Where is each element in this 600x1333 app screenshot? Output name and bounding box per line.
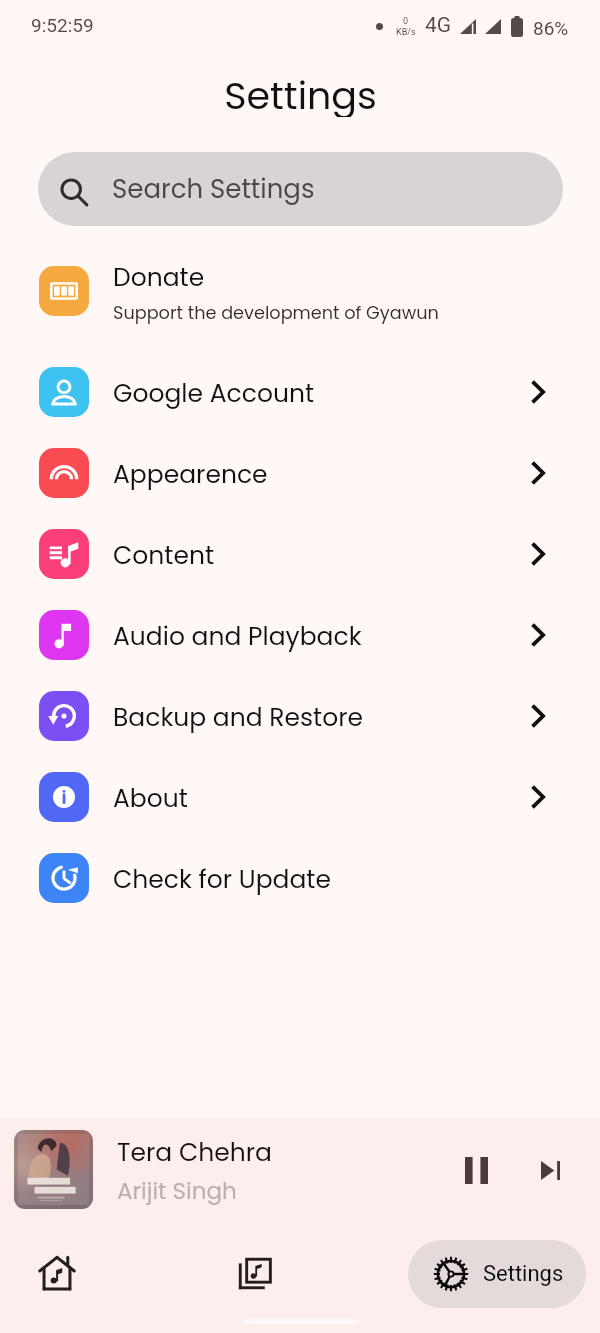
- button[interactable]: Backup and Restore: [0, 675, 600, 756]
- staticText: Backup and Restore: [113, 700, 364, 735]
- button[interactable]: About: [0, 756, 600, 837]
- staticText: Settings: [483, 1261, 564, 1287]
- button[interactable]: Check for Update: [0, 837, 600, 918]
- staticText: Google Account: [113, 376, 314, 411]
- staticText: 86%: [533, 17, 569, 39]
- staticText: Content: [113, 538, 215, 573]
- button[interactable]: Donate: [0, 231, 600, 351]
- button[interactable]: Library: [222, 1241, 287, 1306]
- button[interactable]: Google Account: [0, 351, 600, 432]
- staticText: 4G: [425, 13, 452, 38]
- button[interactable]: Home: [24, 1240, 89, 1305]
- button[interactable]: Tera Chehra: [0, 1118, 600, 1240]
- button[interactable]: Appearence: [0, 432, 600, 513]
- staticText: Arijit Singh: [117, 1175, 237, 1207]
- staticText: 0: [403, 16, 409, 27]
- staticText: About: [113, 781, 188, 816]
- button[interactable]: Settings: [408, 1240, 586, 1308]
- staticText: Tera Chehra: [117, 1135, 272, 1170]
- staticText: Support the development of Gyawun: [113, 300, 439, 325]
- staticText: 9:52:59: [31, 14, 94, 36]
- staticText: Audio and Playback: [113, 619, 362, 654]
- staticText: Appearence: [113, 457, 268, 492]
- button[interactable]: Audio and Playback: [0, 594, 600, 675]
- staticText: Check for Update: [113, 862, 331, 897]
- button[interactable]: Content: [0, 513, 600, 594]
- button[interactable]: Next: [523, 1143, 577, 1197]
- button[interactable]: Pause: [449, 1143, 503, 1197]
- staticText: KB/s: [396, 27, 416, 38]
- staticText: Settings: [224, 69, 377, 117]
- button[interactable]: Search Settings: [38, 152, 563, 226]
- staticText: Donate: [113, 260, 205, 295]
- staticText: Search Settings: [112, 171, 315, 207]
